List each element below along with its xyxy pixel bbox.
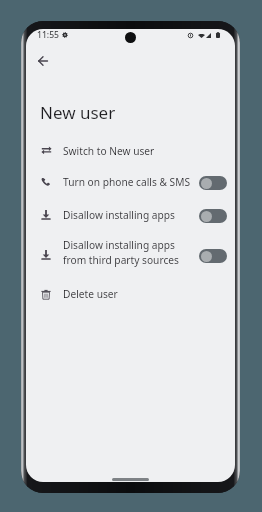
button[interactable]: Disallow installing apps from third part… [26, 231, 235, 278]
button[interactable]: Switch to New user [26, 135, 235, 166]
button[interactable]: Disallow installing apps [26, 198, 235, 231]
staticText: Turn on phone calls & SMS [63, 175, 197, 189]
staticText: Disallow installing apps from third part… [63, 238, 197, 267]
button[interactable]: Turn on phone calls & SMS [26, 166, 235, 198]
button[interactable]: Back [29, 47, 57, 75]
button[interactable]: Delete user [26, 278, 235, 310]
button[interactable]: Toggle [199, 176, 227, 190]
staticText: 11:55 [37, 29, 60, 41]
staticText: Switch to New user [63, 144, 227, 158]
staticText: Disallow installing apps [63, 208, 197, 222]
staticText: Delete user [63, 287, 227, 301]
staticText: New user [40, 101, 116, 124]
button[interactable]: Toggle [199, 249, 227, 263]
button[interactable]: Toggle [199, 209, 227, 223]
